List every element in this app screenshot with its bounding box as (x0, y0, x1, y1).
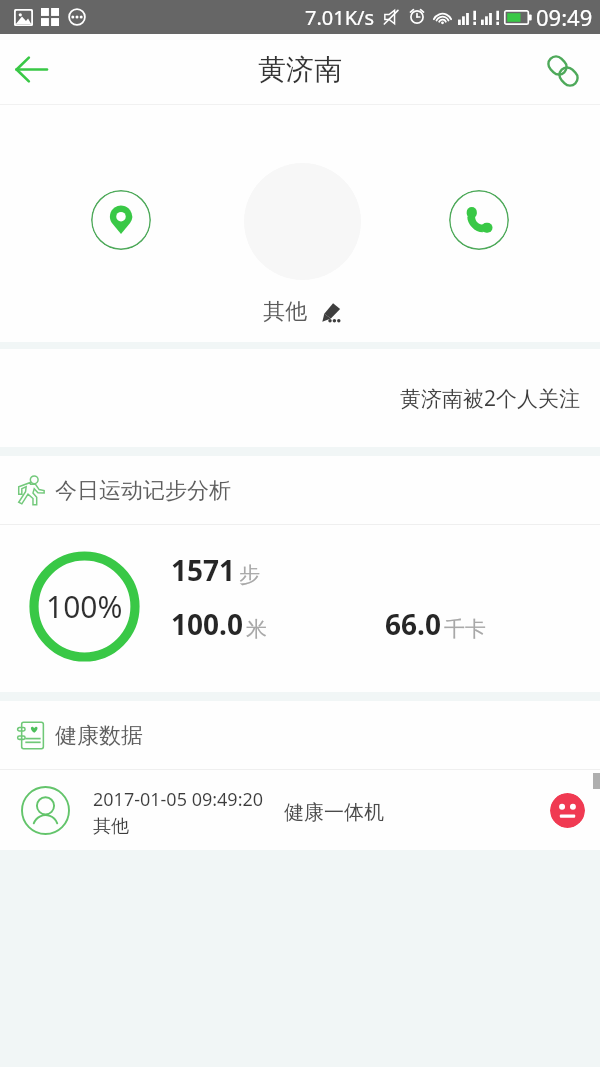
staticText: 其他 (263, 298, 307, 326)
staticText: 7.01K/s (305, 4, 375, 31)
button[interactable]: 黄济南被2个人关注 (0, 349, 600, 447)
staticText: 黄济南 (258, 52, 342, 87)
staticText: 09:49 (536, 2, 593, 32)
button[interactable]: 今日运动记步分析 (0, 456, 600, 524)
staticText: 其他 (93, 815, 129, 838)
staticText: 米 (246, 616, 267, 642)
staticText: 千卡 (444, 616, 486, 642)
staticText: 今日运动记步分析 (55, 477, 231, 505)
staticText: 66.0 (385, 605, 441, 643)
staticText: 健康一体机 (284, 800, 384, 825)
button[interactable]: Call (449, 190, 509, 250)
staticText: 2017-01-05 09:49:20 (93, 787, 264, 812)
staticText: 1571 (171, 551, 236, 589)
staticText: 100.0 (171, 605, 243, 643)
button[interactable]: 其他 (263, 298, 341, 326)
staticText: 100% (46, 586, 123, 627)
button[interactable]: 2017-01-05 09:49:20 (0, 770, 600, 850)
button[interactable]: Mood (550, 793, 585, 828)
button[interactable]: Location (91, 190, 151, 250)
button[interactable]: Back (0, 34, 62, 105)
button[interactable]: Link (538, 34, 600, 105)
staticText: 步 (239, 562, 260, 588)
staticText: 健康数据 (55, 722, 143, 750)
button[interactable]: 健康数据 (0, 701, 600, 769)
staticText: 黄济南被2个人关注 (0, 384, 580, 413)
